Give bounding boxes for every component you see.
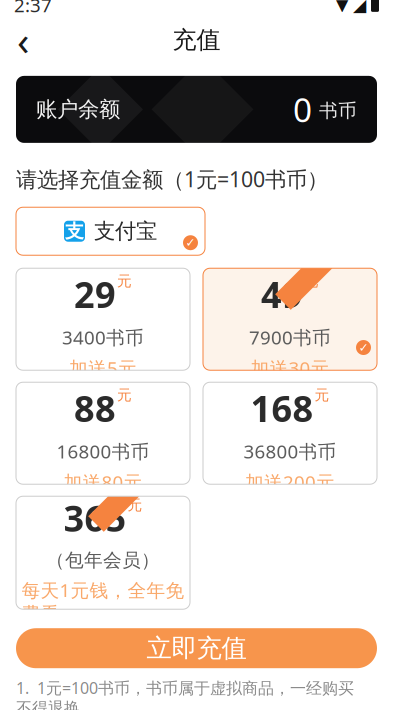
- staticText: 2:37: [14, 0, 52, 17]
- staticText: 365: [63, 494, 126, 542]
- staticText: 元: [127, 496, 142, 514]
- button[interactable]: 返回: [0, 18, 46, 62]
- staticText: 书币: [319, 99, 357, 122]
- staticText: 支付宝: [94, 218, 157, 244]
- button[interactable]: 88: [16, 382, 190, 484]
- staticText: 每天1元钱，全年免费看: [21, 578, 184, 625]
- staticText: 元: [117, 272, 132, 290]
- button[interactable]: 29: [16, 268, 190, 370]
- staticText: 请选择充值金额（1元=100书币）: [16, 165, 328, 193]
- staticText: 翻倍优惠: [115, 465, 167, 481]
- staticText: 49: [261, 270, 303, 318]
- button[interactable]: 立即充值: [16, 628, 377, 668]
- staticText: 29: [74, 270, 116, 318]
- staticText: 元: [314, 386, 329, 404]
- staticText: ✓: [358, 341, 368, 354]
- staticText: 元: [304, 272, 319, 290]
- staticText: ‹: [17, 13, 29, 66]
- button[interactable]: 支: [16, 207, 205, 255]
- staticText: ✓: [185, 236, 195, 249]
- staticText: 充值: [172, 25, 220, 55]
- staticText: 支: [65, 220, 84, 243]
- staticText: 1. 1元=100书币，书币属于虚拟商品，一经购买不得退换: [16, 677, 354, 710]
- button[interactable]: 168: [203, 382, 377, 484]
- staticText: 88: [74, 384, 116, 432]
- staticText: 加送30元: [250, 356, 329, 380]
- staticText: 3400书币: [62, 325, 144, 350]
- staticText: ▼: [336, 0, 348, 14]
- staticText: ◢: [353, 0, 366, 15]
- staticText: 36800书币: [243, 439, 336, 464]
- staticText: 16800书币: [56, 439, 149, 464]
- staticText: 7900书币: [249, 325, 331, 350]
- button[interactable]: 49: [203, 268, 377, 370]
- staticText: （包年会员）: [46, 549, 160, 572]
- staticText: 加送80元: [63, 470, 142, 494]
- staticText: 0: [293, 87, 312, 132]
- staticText: 元: [117, 386, 132, 404]
- staticText: 立即充值: [146, 633, 246, 664]
- staticText: 168: [250, 384, 313, 432]
- button[interactable]: 365: [16, 496, 190, 609]
- staticText: 加送5元: [69, 356, 137, 380]
- staticText: 账户余额: [36, 96, 120, 122]
- staticText: 加送200元: [245, 470, 335, 494]
